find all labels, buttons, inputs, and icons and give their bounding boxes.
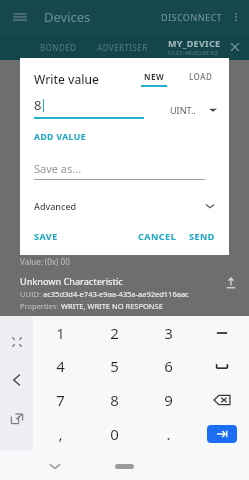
button[interactable]: Close tab [227, 39, 243, 55]
button[interactable]: ADD VALUE [34, 131, 86, 143]
staticText: Unknown Characteristic [20, 275, 123, 287]
button[interactable]: LOAD [185, 74, 217, 85]
button[interactable]: CANCEL [138, 230, 177, 242]
button[interactable]: More options [227, 8, 245, 26]
staticText: Write value [34, 71, 99, 87]
button[interactable]: Hide keyboard [47, 458, 63, 474]
button[interactable]: NEW [137, 71, 171, 87]
button[interactable]: enter [195, 417, 249, 451]
staticText: 3 [164, 323, 173, 343]
staticText: CANCEL [138, 230, 177, 242]
button[interactable]: 7 [33, 383, 87, 417]
button[interactable]: SAVE [34, 230, 58, 242]
button[interactable]: MY_DEVICE [168, 37, 221, 57]
staticText: ac35d3d4-e743-e9aa-435a-aa92ed116aac [43, 289, 189, 299]
staticText: 4 [56, 356, 65, 376]
button[interactable]: BONDED [40, 42, 77, 53]
button[interactable]: 3 [141, 316, 195, 349]
staticText: 9 [164, 390, 173, 410]
staticText: , [58, 424, 63, 444]
staticText: WRITE, WRITE NO RESPONSE [61, 301, 163, 311]
button[interactable]: space [195, 349, 249, 383]
button[interactable]: Floating keyboard [7, 408, 27, 428]
button[interactable]: 1 [33, 316, 87, 349]
button[interactable]: Save as... [34, 161, 205, 180]
staticText: 0 [110, 424, 119, 444]
button[interactable]: SEND [189, 230, 215, 242]
staticText: Unknown Characteristic [20, 76, 112, 87]
staticText: SAVE [34, 230, 58, 242]
button[interactable]: DISCONNECT [161, 11, 223, 23]
button[interactable]: Open navigation menu [9, 6, 31, 28]
staticText: Unknown Characteristic [20, 109, 112, 120]
button[interactable]: del [195, 383, 249, 417]
staticText: Devices [44, 8, 91, 26]
staticText: 2 [110, 323, 119, 343]
button[interactable]: Back [7, 370, 27, 390]
button[interactable]: 0 [87, 417, 141, 451]
staticText: 1 [56, 323, 65, 343]
staticText: SEND [189, 230, 215, 242]
button[interactable]: 2 [87, 316, 141, 349]
staticText: 7 [56, 390, 65, 410]
button[interactable]: 5 [87, 349, 141, 383]
staticText: LOAD [189, 71, 213, 82]
button[interactable]: , [33, 417, 87, 451]
button[interactable]: UINT.. [170, 104, 217, 119]
button[interactable]: Write value [224, 276, 238, 290]
staticText: . [166, 424, 171, 444]
staticText: 8 [34, 96, 42, 114]
button[interactable]: 8 [87, 383, 141, 417]
button[interactable]: ADVERTISER [97, 42, 148, 53]
button[interactable]: . [141, 417, 195, 451]
button[interactable]: Advanced [34, 200, 215, 212]
staticText: 6 [164, 356, 173, 376]
button[interactable]: 8 [34, 96, 144, 119]
staticText: F3:EC:48:8D:EE:62 [168, 49, 218, 57]
button[interactable]: 9 [141, 383, 195, 417]
staticText: MY_DEVICE [168, 37, 221, 49]
staticText: Value: (0x) 00 [20, 256, 70, 267]
staticText: Save as... [34, 161, 82, 176]
button[interactable]: 6 [141, 349, 195, 383]
button[interactable]: minus [195, 316, 249, 349]
staticText: 8 [110, 390, 119, 410]
staticText: 5 [110, 356, 119, 376]
staticText: UINT.. [170, 104, 196, 116]
button[interactable]: 4 [33, 349, 87, 383]
staticText: ADD VALUE [34, 131, 86, 143]
staticText: Advanced [34, 200, 77, 212]
staticText: Properties: [20, 301, 61, 311]
staticText: NEW [144, 71, 165, 82]
button[interactable]: Resize keyboard [7, 332, 27, 352]
staticText: UUID: [20, 289, 43, 299]
button[interactable]: Home [115, 464, 134, 469]
